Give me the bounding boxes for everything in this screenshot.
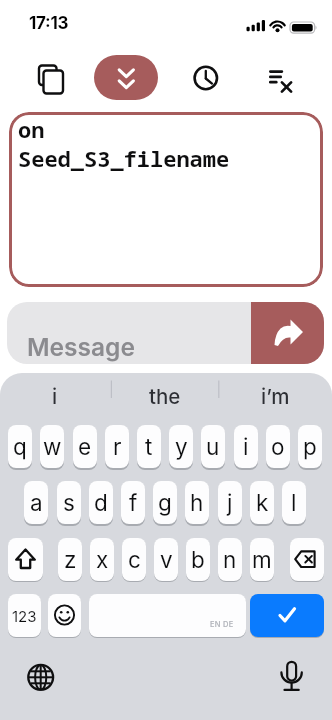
staticText: v bbox=[160, 546, 173, 573]
button[interactable]: m bbox=[250, 538, 274, 581]
button[interactable] bbox=[250, 594, 324, 637]
staticText: l bbox=[291, 489, 297, 516]
staticText: m bbox=[252, 546, 272, 573]
staticText: c bbox=[128, 546, 141, 573]
button[interactable]: s bbox=[57, 481, 81, 524]
button[interactable]: y bbox=[169, 425, 193, 468]
staticText: i bbox=[243, 433, 249, 460]
staticText: f bbox=[129, 489, 138, 516]
button[interactable]: w bbox=[40, 425, 64, 468]
button[interactable]: 123 bbox=[8, 594, 41, 637]
staticText: u bbox=[206, 433, 220, 460]
button[interactable] bbox=[48, 594, 81, 637]
button[interactable]: c bbox=[122, 538, 146, 581]
button[interactable]: f bbox=[121, 481, 145, 524]
staticText: z bbox=[64, 546, 77, 573]
button[interactable] bbox=[7, 302, 324, 364]
staticText: i bbox=[52, 384, 58, 409]
staticText: j bbox=[227, 489, 233, 516]
button[interactable]: e bbox=[73, 425, 97, 468]
button[interactable]: the bbox=[111, 380, 218, 412]
button[interactable]: z bbox=[58, 538, 82, 581]
staticText: 17:13 bbox=[29, 13, 69, 34]
staticText: Message bbox=[27, 332, 135, 362]
staticText: n bbox=[223, 546, 237, 573]
button[interactable]: u bbox=[201, 425, 225, 468]
button[interactable]: i bbox=[234, 425, 258, 468]
staticText: t bbox=[145, 433, 153, 460]
button[interactable] bbox=[262, 63, 298, 97]
button[interactable] bbox=[94, 55, 158, 100]
button[interactable] bbox=[33, 59, 69, 97]
staticText: p bbox=[303, 433, 317, 460]
staticText: s bbox=[63, 489, 75, 516]
button[interactable]: i bbox=[0, 380, 110, 412]
button[interactable]: i’m bbox=[219, 380, 332, 412]
button[interactable]: h bbox=[185, 481, 209, 524]
staticText: i’m bbox=[261, 384, 290, 409]
button[interactable] bbox=[9, 112, 323, 287]
staticText: q bbox=[13, 433, 27, 460]
button[interactable]: k bbox=[250, 481, 274, 524]
button[interactable]: x bbox=[90, 538, 114, 581]
button[interactable]: q bbox=[8, 425, 32, 468]
staticText: the bbox=[149, 384, 181, 409]
staticText: e bbox=[78, 433, 92, 460]
button[interactable] bbox=[189, 61, 223, 95]
button[interactable]: r bbox=[105, 425, 129, 468]
button[interactable]: n bbox=[218, 538, 242, 581]
button[interactable] bbox=[24, 661, 57, 694]
button[interactable]: v bbox=[154, 538, 178, 581]
button[interactable]: o bbox=[266, 425, 290, 468]
button[interactable]: g bbox=[153, 481, 177, 524]
staticText: k bbox=[256, 489, 269, 516]
staticText: w bbox=[43, 433, 62, 460]
staticText: on Seed_S3_filename bbox=[18, 114, 230, 174]
button[interactable]: j bbox=[218, 481, 242, 524]
staticText: 123 bbox=[12, 607, 37, 625]
staticText: h bbox=[190, 489, 204, 516]
button[interactable]: d bbox=[89, 481, 113, 524]
button[interactable] bbox=[275, 660, 308, 693]
button[interactable]: b bbox=[186, 538, 210, 581]
button[interactable]: p bbox=[298, 425, 322, 468]
button[interactable]: a bbox=[24, 481, 48, 524]
button[interactable] bbox=[290, 538, 324, 581]
staticText: EN DE bbox=[210, 620, 234, 629]
staticText: d bbox=[94, 489, 108, 516]
button[interactable]: t bbox=[137, 425, 161, 468]
staticText: y bbox=[175, 433, 188, 460]
button[interactable]: l bbox=[282, 481, 306, 524]
staticText: x bbox=[96, 546, 109, 573]
staticText: o bbox=[271, 433, 285, 460]
staticText: r bbox=[113, 433, 122, 460]
staticText: b bbox=[191, 546, 205, 573]
button[interactable] bbox=[251, 302, 324, 364]
button[interactable] bbox=[89, 594, 246, 637]
button[interactable] bbox=[8, 538, 43, 581]
staticText: a bbox=[30, 489, 43, 516]
staticText: g bbox=[158, 489, 172, 516]
